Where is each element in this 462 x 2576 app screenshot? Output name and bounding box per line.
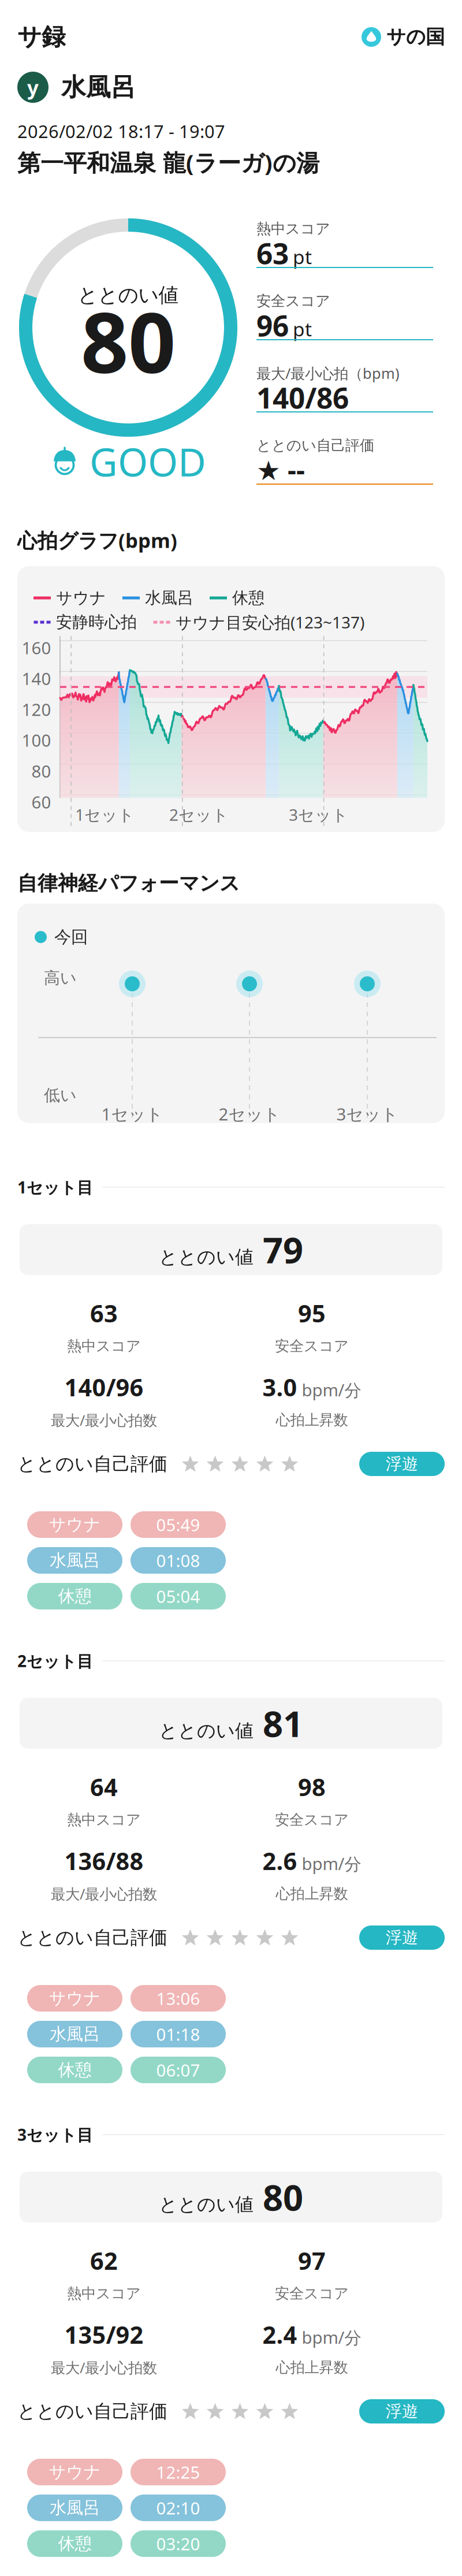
staticText: 100 xyxy=(22,729,51,751)
staticText: 2026/02/02 18:17 - 19:07 xyxy=(17,119,225,143)
staticText: 水風呂 xyxy=(50,2024,100,2045)
staticText: 1セット xyxy=(75,804,135,825)
staticText: 01:18 xyxy=(156,2023,200,2045)
staticText: サウナ xyxy=(56,588,106,608)
staticText: 63 xyxy=(90,1297,118,1329)
staticText: 80 xyxy=(31,760,51,782)
staticText: 休憩 xyxy=(58,2533,92,2554)
staticText: ★ -- xyxy=(256,452,305,488)
staticText: ととのい自己評価 xyxy=(17,2400,167,2423)
staticText: サの国 xyxy=(386,25,445,49)
button[interactable]: サの国 xyxy=(362,25,445,49)
staticText: 熱中スコア xyxy=(67,1337,141,1355)
staticText: pt xyxy=(293,244,312,269)
staticText: bpm/分 xyxy=(302,1379,361,1401)
staticText: 97 xyxy=(298,2245,326,2276)
staticText: 浮遊 xyxy=(386,1454,418,1474)
staticText: サウナ xyxy=(49,2462,101,2482)
staticText: 安全スコア xyxy=(256,292,330,310)
staticText: サウナ xyxy=(49,1988,101,2009)
staticText: サ録 xyxy=(17,22,65,52)
staticText: ととのい値 xyxy=(159,1246,254,1269)
staticText: 水風呂 xyxy=(50,2497,100,2518)
staticText: 140/86 xyxy=(256,379,349,416)
staticText: 02:10 xyxy=(156,2497,200,2519)
staticText: 3セット xyxy=(289,804,348,825)
staticText: 最大/最小心拍数 xyxy=(51,1884,157,1903)
staticText: 1セット xyxy=(101,1103,163,1125)
staticText: 休憩 xyxy=(58,2060,92,2080)
staticText: 05:49 xyxy=(156,1513,200,1536)
staticText: 80 xyxy=(263,2174,303,2221)
staticText: 熱中スコア xyxy=(67,2284,141,2302)
staticText: 安全スコア xyxy=(275,1811,349,1829)
button[interactable]: 浮遊 xyxy=(359,1452,445,1476)
staticText: GOOD xyxy=(90,436,206,487)
staticText: y xyxy=(27,74,39,101)
staticText: 安全スコア xyxy=(275,1337,349,1355)
staticText: 140 xyxy=(22,667,51,690)
staticText: 2セット目 xyxy=(17,1650,93,1672)
staticText: 3.0 xyxy=(262,1371,297,1403)
staticText: 3セット xyxy=(336,1103,398,1125)
staticText: 63 xyxy=(256,234,289,272)
staticText: pt xyxy=(293,316,312,342)
staticText: 81 xyxy=(263,1700,303,1747)
staticText: 62 xyxy=(90,2245,118,2276)
staticText: 140/96 xyxy=(64,1371,144,1403)
staticText: 水風呂 xyxy=(145,588,193,608)
staticText: 浮遊 xyxy=(386,2401,418,2421)
staticText: 熱中スコア xyxy=(256,220,330,238)
staticText: 05:04 xyxy=(156,1585,200,1607)
staticText: bpm/分 xyxy=(302,1852,361,1875)
staticText: サウナ xyxy=(49,1514,101,1535)
staticText: 96 xyxy=(256,306,289,344)
staticText: 13:06 xyxy=(156,1987,200,2010)
button[interactable]: 浮遊 xyxy=(359,1926,445,1950)
staticText: 休憩 xyxy=(58,1586,92,1607)
staticText: 心拍グラフ(bpm) xyxy=(17,527,177,553)
staticText: 安全スコア xyxy=(275,2284,349,2302)
staticText: 水風呂 xyxy=(61,72,136,102)
staticText: 高い xyxy=(44,968,77,988)
staticText: 3セット目 xyxy=(17,2124,93,2145)
staticText: 60 xyxy=(31,791,51,813)
staticText: 160 xyxy=(22,636,51,659)
staticText: 12:25 xyxy=(156,2461,200,2483)
staticText: 低い xyxy=(44,1085,77,1105)
staticText: 浮遊 xyxy=(386,1928,418,1948)
staticText: 今回 xyxy=(54,927,88,947)
staticText: 135/92 xyxy=(64,2319,144,2350)
staticText: 第一平和温泉 龍(ラーガ)の湯 xyxy=(17,147,319,178)
staticText: 水風呂 xyxy=(50,1550,100,1571)
staticText: 01:08 xyxy=(156,1549,200,1572)
staticText: 安静時心拍 xyxy=(56,612,137,632)
staticText: サウナ目安心拍(123~137) xyxy=(176,611,364,633)
staticText: 2セット xyxy=(219,1103,280,1125)
staticText: 最大/最小心拍数 xyxy=(51,2358,157,2377)
staticText: 03:20 xyxy=(156,2532,200,2555)
staticText: 最大/最小心拍数 xyxy=(51,1410,157,1430)
staticText: 2セット xyxy=(169,804,229,825)
staticText: 136/88 xyxy=(64,1845,144,1877)
staticText: 心拍上昇数 xyxy=(276,1885,348,1903)
staticText: 心拍上昇数 xyxy=(276,1411,348,1429)
staticText: bpm/分 xyxy=(302,2326,361,2349)
staticText: 心拍上昇数 xyxy=(276,2358,348,2376)
staticText: 自律神経パフォーマンス xyxy=(17,871,240,896)
staticText: ととのい値 xyxy=(159,2193,254,2216)
staticText: 2.6 xyxy=(262,1845,297,1877)
staticText: 95 xyxy=(298,1297,326,1329)
staticText: 79 xyxy=(263,1226,303,1273)
staticText: 06:07 xyxy=(156,2059,200,2081)
button[interactable]: 浮遊 xyxy=(359,2399,445,2423)
staticText: 1セット目 xyxy=(17,1176,93,1198)
staticText: ととのい値 xyxy=(159,1720,254,1742)
staticText: ととのい自己評価 xyxy=(256,436,374,454)
staticText: 熱中スコア xyxy=(67,1811,141,1829)
staticText: 2.4 xyxy=(262,2319,297,2350)
staticText: 80 xyxy=(81,286,176,396)
staticText: ととのい自己評価 xyxy=(17,1453,167,1475)
staticText: 最大/最小心拍（bpm) xyxy=(256,363,400,383)
staticText: 98 xyxy=(298,1771,326,1803)
